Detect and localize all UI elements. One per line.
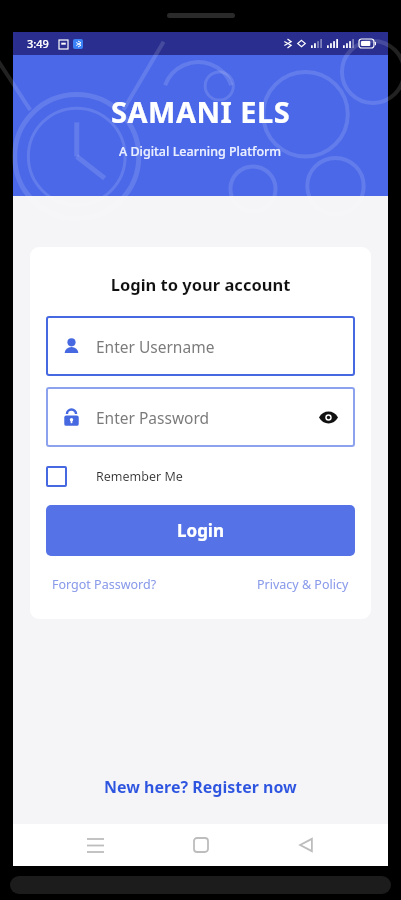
staticText: Remember Me xyxy=(96,468,183,485)
button[interactable]: New here? Register now xyxy=(92,768,309,806)
button[interactable]: Login xyxy=(46,505,355,556)
staticText: A Digital Learning Platform xyxy=(119,143,282,160)
staticText: Enter Password xyxy=(96,407,315,428)
button[interactable]: Enter Username xyxy=(46,316,355,376)
button[interactable]: Back xyxy=(283,824,329,866)
button[interactable]: Remember Me xyxy=(46,463,183,490)
staticText: 3:49 xyxy=(27,36,49,51)
button[interactable]: Privacy & Policy xyxy=(253,572,353,597)
staticText: Enter Username xyxy=(96,336,215,357)
staticText: SAMANI ELS xyxy=(111,92,291,131)
staticText: Login xyxy=(177,519,225,542)
button[interactable]: Show password xyxy=(315,404,341,430)
button[interactable]: Home xyxy=(178,824,224,866)
button[interactable]: Enter Password xyxy=(46,387,355,447)
button[interactable]: Forgot Password? xyxy=(48,572,161,597)
staticText: Login to your account xyxy=(46,273,355,295)
button[interactable]: Recent apps xyxy=(72,824,118,866)
